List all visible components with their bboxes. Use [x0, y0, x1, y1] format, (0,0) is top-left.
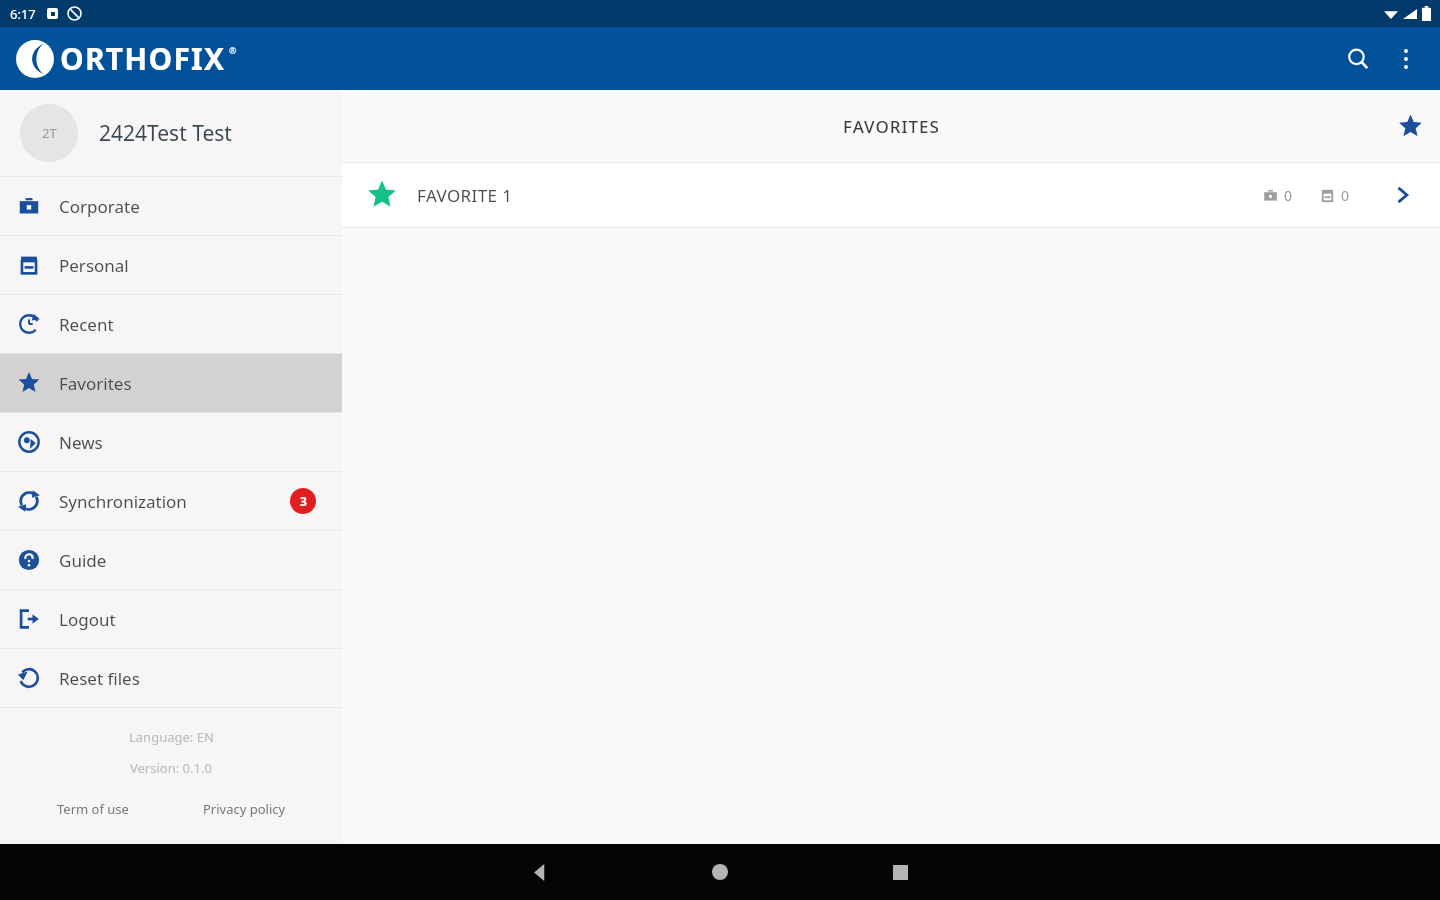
- staticText: Favorites: [59, 372, 132, 395]
- button[interactable]: Search: [1334, 35, 1382, 83]
- staticText: Version: 0.1.0: [130, 759, 212, 777]
- button[interactable]: Back: [450, 844, 630, 900]
- staticText: 0: [1341, 186, 1350, 205]
- button[interactable]: Recents: [810, 844, 990, 900]
- staticText: ORTHOFIX: [60, 38, 226, 79]
- button[interactable]: FAVORITE 1: [342, 163, 1440, 227]
- button[interactable]: Synchronization: [0, 472, 342, 530]
- button[interactable]: Reset files: [0, 649, 342, 707]
- button[interactable]: Corporate: [0, 177, 342, 235]
- button[interactable]: Favorites: [0, 354, 342, 412]
- staticText: 3: [300, 493, 307, 509]
- staticText: Guide: [59, 549, 107, 572]
- staticText: Synchronization: [59, 490, 187, 513]
- staticText: FAVORITE 1: [417, 184, 513, 207]
- button[interactable]: More options: [1382, 35, 1430, 83]
- button[interactable]: Guide: [0, 531, 342, 589]
- button[interactable]: Privacy policy: [195, 796, 294, 822]
- staticText: Term of use: [57, 800, 129, 818]
- button[interactable]: Home: [630, 844, 810, 900]
- button[interactable]: Open favorite: [1380, 173, 1424, 217]
- staticText: 2T: [42, 124, 57, 142]
- staticText: 2424Test Test: [99, 119, 232, 148]
- staticText: News: [59, 431, 103, 454]
- staticText: Logout: [59, 608, 116, 631]
- staticText: Corporate: [59, 195, 140, 218]
- staticText: Privacy policy: [203, 800, 286, 818]
- button[interactable]: News: [0, 413, 342, 471]
- button[interactable]: Favorites filter: [1386, 102, 1434, 150]
- staticText: FAVORITES: [843, 115, 940, 138]
- button[interactable]: Personal: [0, 236, 342, 294]
- staticText: 0: [1284, 186, 1293, 205]
- staticText: 6:17: [10, 5, 36, 23]
- staticText: Language: EN: [129, 728, 214, 746]
- button[interactable]: Recent: [0, 295, 342, 353]
- button[interactable]: Term of use: [49, 796, 137, 822]
- button[interactable]: Logout: [0, 590, 342, 648]
- staticText: ®: [229, 44, 237, 56]
- staticText: Reset files: [59, 667, 140, 690]
- staticText: Recent: [59, 313, 114, 336]
- staticText: Personal: [59, 254, 129, 277]
